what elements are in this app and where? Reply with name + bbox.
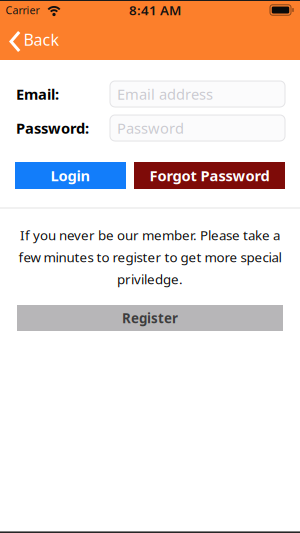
staticText: few minutes to register to get more spec… <box>18 248 281 266</box>
staticText: Email: <box>16 84 59 104</box>
button[interactable]: Back <box>6 27 76 57</box>
button[interactable]: Forgot Password <box>134 162 285 189</box>
staticText: Password <box>117 118 184 138</box>
staticText: Carrier <box>5 3 39 17</box>
button[interactable]: Email address <box>110 81 285 107</box>
staticText: Forgot Password <box>149 166 269 185</box>
staticText: priviledge. <box>117 270 183 288</box>
staticText: Password: <box>16 118 89 138</box>
staticText: Back <box>23 29 59 50</box>
button[interactable]: Login <box>15 162 126 189</box>
staticText: 8:41 AM <box>129 1 181 19</box>
button[interactable]: Register <box>17 305 283 331</box>
staticText: If you never be our member. Please take … <box>20 226 280 244</box>
staticText: Login <box>50 166 90 185</box>
button[interactable]: Password <box>110 115 285 141</box>
staticText: Register <box>122 309 178 327</box>
staticText: Email address <box>117 84 213 104</box>
